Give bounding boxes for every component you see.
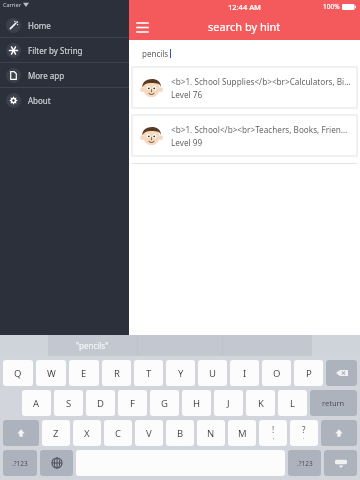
staticText: Y [178,367,184,380]
staticText: R [114,367,120,380]
button[interactable]: Z [42,420,70,446]
button[interactable]: <b>1. School Supplies</b><br>Calculators… [132,67,357,108]
staticText: M [238,427,247,440]
button[interactable]: X [73,420,101,446]
staticText: 100% [323,2,340,11]
button[interactable]: Key [321,420,357,446]
button[interactable]: About [0,88,129,112]
staticText: N [207,427,215,440]
staticText: ? [302,424,306,435]
staticText: U [209,367,216,380]
staticText: V [146,427,152,440]
staticText: X [84,427,90,440]
staticText: .?123 [12,459,28,468]
button[interactable]: Filter by String [0,38,129,62]
staticText: Filter by String [28,45,83,56]
button[interactable]: Q [3,360,33,386]
button[interactable]: T [134,360,163,386]
button[interactable]: .?123 [3,450,37,476]
staticText: Carrier [3,1,21,8]
staticText: Home [28,20,51,31]
staticText: . [303,433,305,441]
button[interactable]: "pencils" [48,335,137,356]
button[interactable]: Key [324,450,357,476]
button[interactable]: J [214,390,243,416]
staticText: .?123 [297,459,313,468]
staticText: G [161,397,168,410]
staticText: D [97,397,104,410]
button[interactable]: F [118,390,147,416]
button[interactable]: Key [40,450,73,476]
staticText: Level 76 [171,89,203,100]
staticText: <b>1. School Supplies</b><br>Calculators… [171,76,352,87]
staticText: return [322,398,345,408]
button[interactable]: A [22,390,51,416]
button[interactable]: R [102,360,131,386]
staticText: Z [53,427,59,440]
staticText: W [47,367,56,380]
staticText: B [177,427,184,440]
button[interactable]: N [197,420,225,446]
button[interactable]: V [135,420,163,446]
button[interactable]: P [294,360,323,386]
button[interactable]: S [54,390,83,416]
staticText: H [193,397,201,410]
staticText: pencils [142,48,169,59]
staticText: , [273,433,275,441]
staticText: I [243,367,247,380]
staticText: P [306,367,312,380]
button[interactable]: H [182,390,211,416]
button[interactable]: K [246,390,275,416]
button[interactable]: pencils [129,40,360,67]
button[interactable]: .?123 [288,450,321,476]
button[interactable]: More app [0,63,129,87]
staticText: S [66,397,72,410]
button[interactable]: Key [326,360,357,386]
staticText: T [146,367,152,380]
button[interactable]: C [104,420,132,446]
button[interactable]: Key [3,420,39,446]
staticText: About [28,95,51,106]
button[interactable]: Home [0,13,129,37]
staticText: O [273,367,281,380]
button[interactable]: I [230,360,259,386]
staticText: ! [272,424,275,435]
staticText: Level 99 [171,137,203,148]
button[interactable]: U [198,360,227,386]
staticText: A [33,397,40,410]
staticText: search by hint [208,19,281,34]
button[interactable]: W [36,360,66,386]
staticText: E [81,367,87,380]
staticText: "pencils" [76,340,109,351]
button[interactable]: ? [290,420,318,446]
staticText: More app [28,70,65,81]
staticText: <b>1. School</b><br>Teachers, Books, Fri… [171,124,352,135]
button[interactable]: E [69,360,99,386]
button[interactable]: M [228,420,256,446]
staticText: Q [14,367,22,380]
button[interactable]: ! [259,420,287,446]
staticText: C [115,427,122,440]
staticText: F [130,397,135,410]
button[interactable]: Menu [129,14,155,40]
staticText: K [258,397,264,410]
button[interactable]: return [310,390,357,416]
button[interactable]: D [86,390,115,416]
button[interactable]: G [150,390,179,416]
staticText: 12:44 AM [228,2,261,12]
button[interactable]: O [262,360,291,386]
button[interactable]: L [278,390,307,416]
staticText: L [290,397,295,410]
button[interactable]: <b>1. School</b><br>Teachers, Books, Fri… [132,115,357,156]
button[interactable]: B [166,420,194,446]
button[interactable]: Y [166,360,195,386]
staticText: J [227,397,230,410]
